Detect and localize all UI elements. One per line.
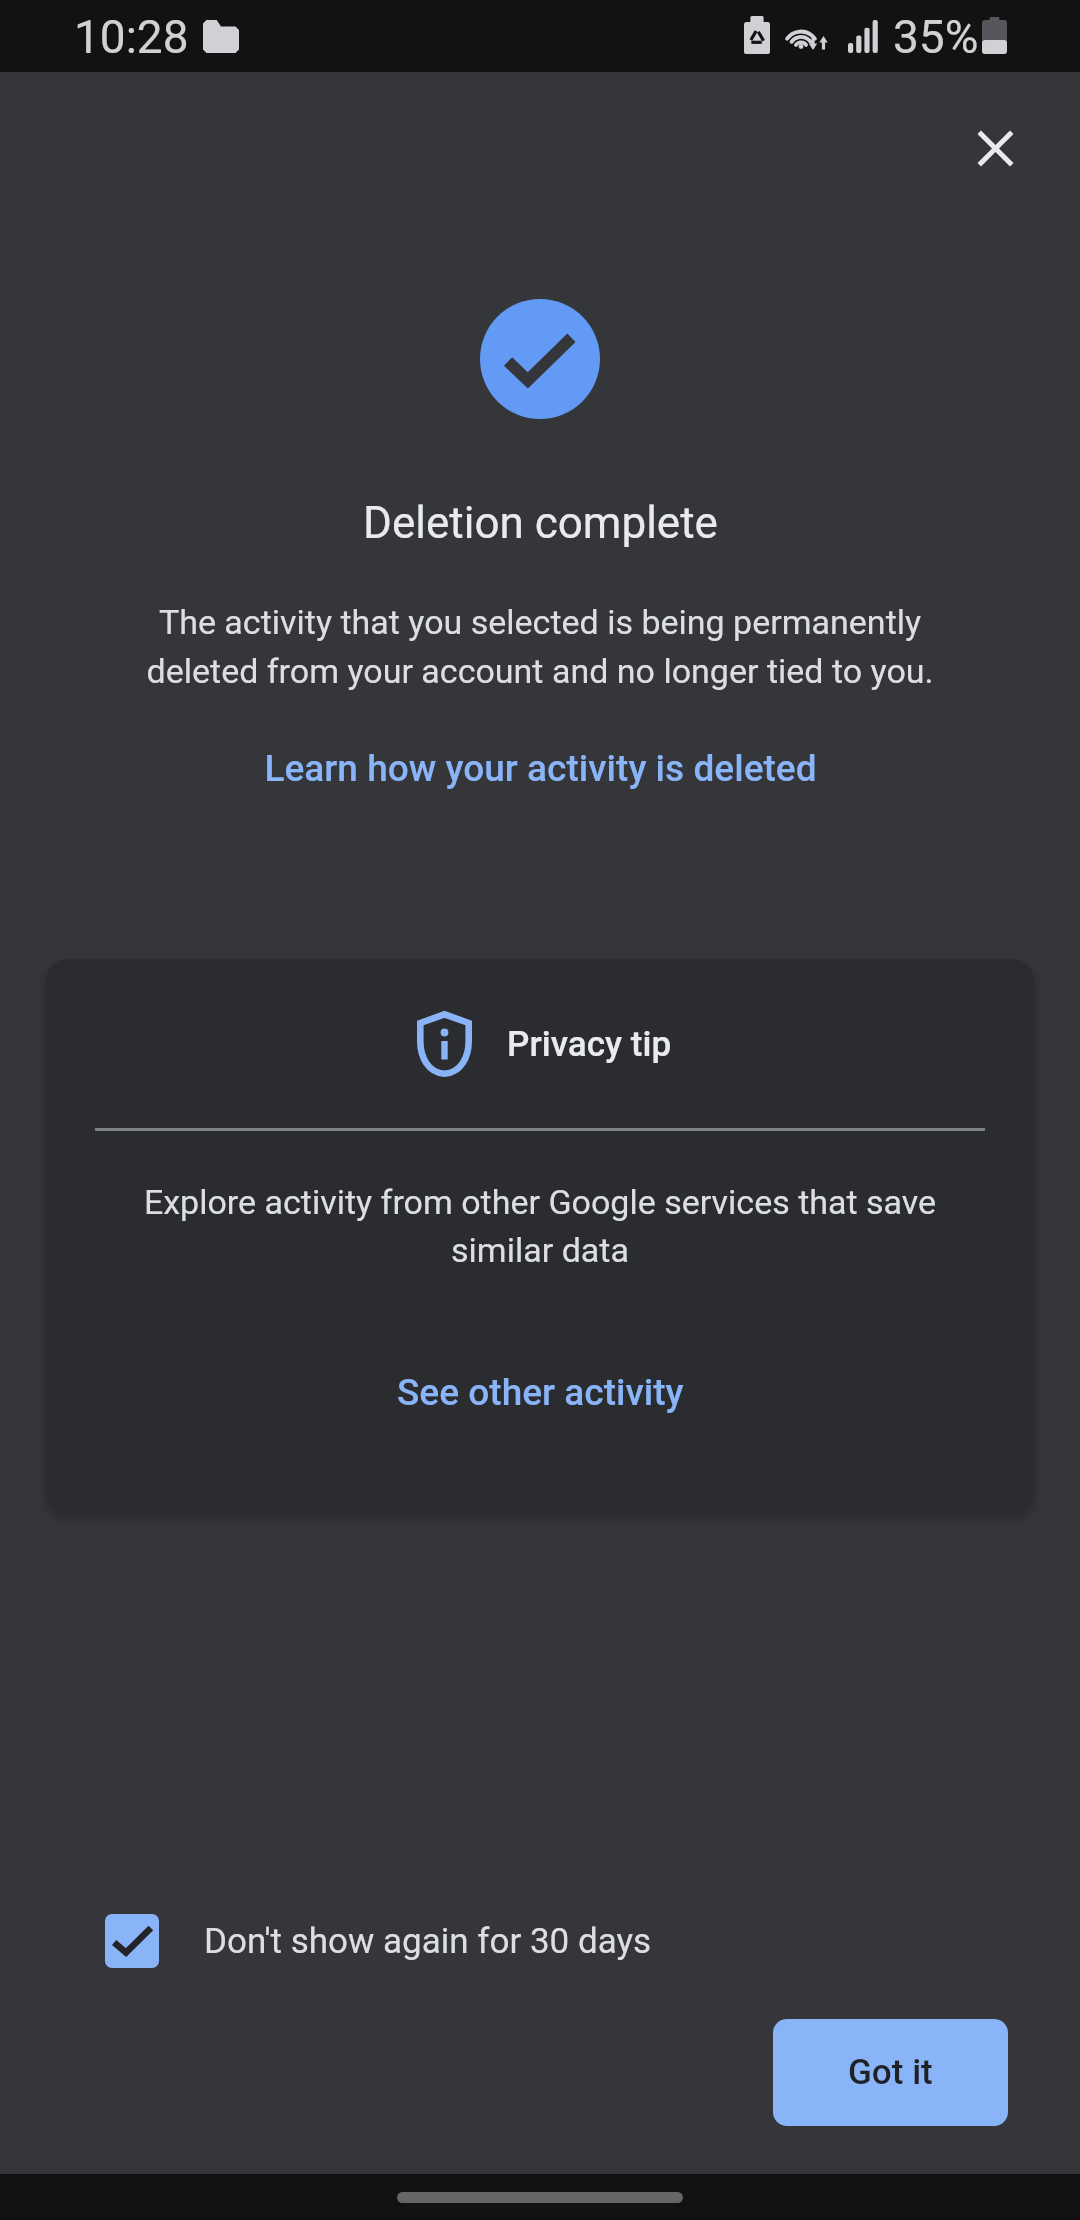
button[interactable]: Don't show again for 30 days (81, 1898, 676, 1984)
button[interactable]: Learn how your activity is deleted (254, 741, 827, 796)
button[interactable]: Got it (773, 2019, 1008, 2126)
button[interactable]: Close (948, 101, 1043, 196)
staticText: Don't show again for 30 days (204, 1921, 652, 1962)
staticText: Learn how your activity is deleted (264, 747, 817, 790)
staticText: Deletion complete (363, 497, 718, 549)
staticText: 35% (893, 10, 979, 64)
staticText: Explore activity from other Google servi… (106, 1182, 974, 1270)
staticText: Privacy tip (507, 1024, 672, 1065)
staticText: See other activity (397, 1371, 684, 1414)
staticText: 10:28 (74, 10, 189, 64)
staticText: The activity that you selected is being … (140, 602, 940, 691)
button[interactable]: See other activity (387, 1365, 694, 1420)
staticText: Got it (848, 2052, 933, 2093)
